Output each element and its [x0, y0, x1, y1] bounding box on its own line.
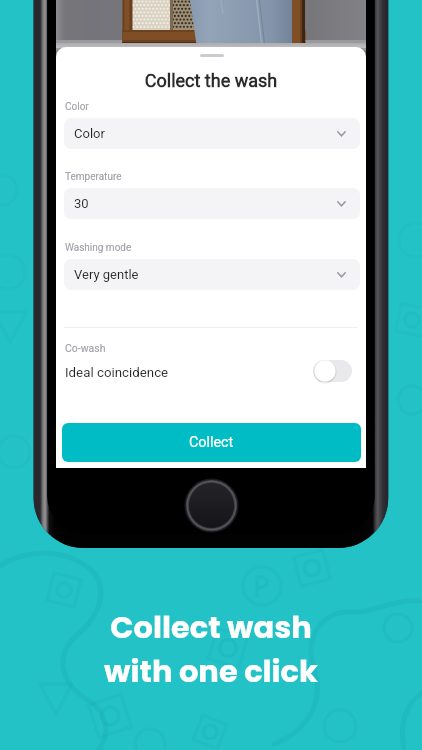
button[interactable]: Very gentle [64, 259, 360, 290]
staticText: Temperature [65, 171, 122, 183]
staticText: Collect the wash [56, 70, 366, 91]
staticText: Ideal coincidence [65, 365, 313, 381]
button[interactable]: 30 [64, 188, 360, 219]
staticText: 30 [74, 196, 337, 211]
button[interactable]: Ideal coincidence [56, 355, 366, 387]
staticText: Color [65, 101, 89, 113]
staticText: Collect wash with one click [0, 606, 422, 693]
staticText: Co-wash [65, 342, 106, 354]
staticText: Color [74, 126, 337, 141]
staticText: Collect [189, 434, 234, 451]
button[interactable]: Collect [62, 423, 361, 462]
staticText: Washing mode [65, 242, 132, 254]
staticText: Very gentle [74, 267, 337, 282]
button[interactable]: Color [64, 118, 360, 149]
